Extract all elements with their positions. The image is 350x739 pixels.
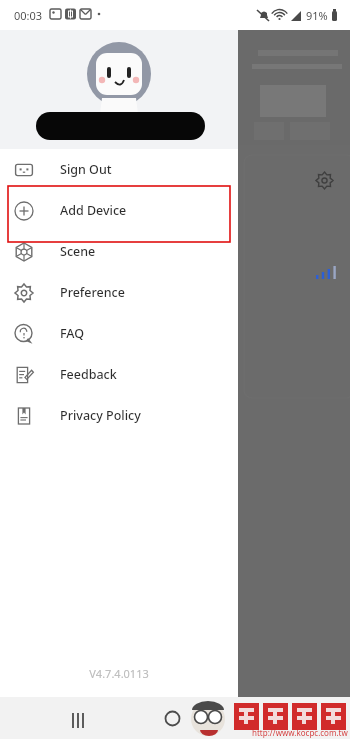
button[interactable]: Home: [154, 700, 190, 736]
button[interactable]: Back: [260, 701, 294, 735]
button[interactable]: Privacy Policy: [0, 395, 238, 436]
staticText: Preference: [60, 284, 125, 301]
staticText: http://www.kocpc.com.tw: [252, 727, 348, 738]
button[interactable]: Add Device: [0, 190, 238, 231]
button[interactable]: Recents: [60, 701, 94, 735]
staticText: Scene: [60, 243, 96, 260]
staticText: Sign Out: [60, 161, 112, 178]
staticText: Feedback: [60, 366, 117, 383]
staticText: 91%: [306, 8, 328, 23]
button[interactable]: Scene: [0, 231, 238, 272]
button[interactable]: Preference: [0, 272, 238, 313]
staticText: Privacy Policy: [60, 407, 141, 424]
button[interactable]: Feedback: [0, 354, 238, 395]
staticText: Add Device: [60, 202, 127, 219]
button[interactable]: Sign Out: [0, 149, 238, 190]
staticText: V4.7.4.0113: [0, 666, 238, 681]
staticText: 00:03: [14, 8, 43, 23]
button[interactable]: FAQ: [0, 313, 238, 354]
button[interactable]: Settings: [315, 171, 334, 190]
staticText: FAQ: [60, 325, 85, 342]
